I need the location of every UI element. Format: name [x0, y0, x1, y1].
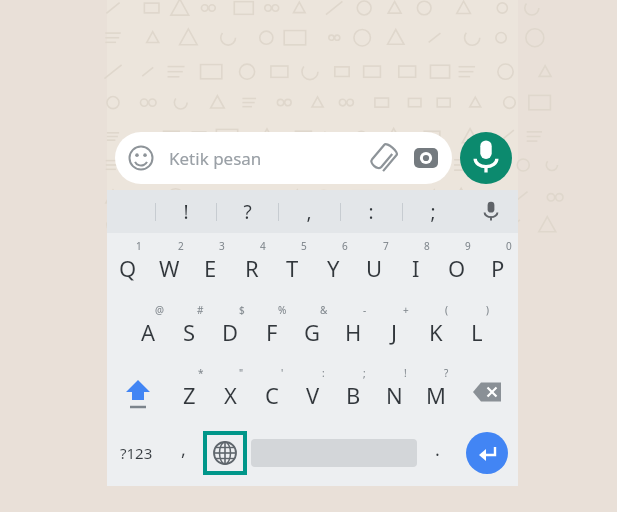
- staticText: E: [204, 253, 217, 283]
- button[interactable]: Camera: [412, 144, 440, 172]
- button[interactable]: Shift: [107, 360, 169, 423]
- staticText: ": [239, 366, 244, 380]
- button[interactable]: C: [251, 360, 292, 423]
- staticText: M: [426, 380, 446, 410]
- button[interactable]: N: [374, 360, 415, 423]
- staticText: Q: [119, 253, 137, 283]
- button[interactable]: G: [292, 297, 333, 360]
- staticText: 0: [506, 239, 512, 253]
- button[interactable]: ?123: [107, 423, 166, 482]
- staticText: N: [386, 380, 403, 410]
- button[interactable]: F: [251, 297, 292, 360]
- staticText: R: [245, 253, 259, 283]
- staticText: X: [224, 380, 237, 410]
- staticText: ?: [444, 366, 449, 380]
- staticText: Z: [183, 380, 196, 410]
- staticText: 3: [219, 239, 225, 253]
- staticText: P: [491, 253, 505, 283]
- button[interactable]: Y: [313, 233, 354, 297]
- button[interactable]: H: [333, 297, 374, 360]
- staticText: S: [183, 317, 196, 347]
- button[interactable]: B: [333, 360, 374, 423]
- button[interactable]: V: [292, 360, 333, 423]
- staticText: D: [222, 317, 239, 347]
- button[interactable]: T: [272, 233, 313, 297]
- staticText: ;: [430, 199, 436, 225]
- button[interactable]: L: [456, 297, 497, 360]
- button[interactable]: Enter: [466, 432, 508, 474]
- staticText: C: [265, 380, 279, 410]
- button[interactable]: Q: [107, 233, 149, 297]
- staticText: 9: [465, 239, 471, 253]
- staticText: F: [266, 317, 278, 347]
- staticText: 2: [178, 239, 184, 253]
- button[interactable]: Voice message: [460, 132, 512, 184]
- button[interactable]: W: [149, 233, 190, 297]
- staticText: :: [322, 366, 325, 380]
- staticText: !: [404, 366, 407, 380]
- staticText: V: [306, 380, 320, 410]
- staticText: -: [363, 303, 367, 317]
- staticText: &: [320, 303, 328, 317]
- staticText: ,: [306, 199, 312, 225]
- staticText: 4: [260, 239, 266, 253]
- staticText: ): [486, 303, 489, 317]
- button[interactable]: D: [210, 297, 251, 360]
- staticText: 7: [383, 239, 389, 253]
- button[interactable]: ,: [278, 190, 340, 233]
- button[interactable]: ?: [216, 190, 278, 233]
- button[interactable]: ,: [166, 423, 201, 482]
- button[interactable]: S: [169, 297, 210, 360]
- button[interactable]: I: [395, 233, 436, 297]
- button[interactable]: Z: [169, 360, 210, 423]
- staticText: +: [403, 303, 409, 317]
- staticText: .: [435, 437, 440, 462]
- staticText: !: [183, 199, 189, 225]
- button[interactable]: :: [340, 190, 402, 233]
- button[interactable]: U: [354, 233, 395, 297]
- staticText: @: [155, 303, 164, 317]
- staticText: ': [281, 366, 284, 380]
- staticText: *: [198, 366, 204, 380]
- button[interactable]: Attach: [368, 143, 398, 173]
- button[interactable]: P: [477, 233, 518, 297]
- staticText: ;: [363, 366, 366, 380]
- button[interactable]: M: [415, 360, 456, 423]
- staticText: I: [412, 253, 420, 283]
- staticText: O: [448, 253, 466, 283]
- button[interactable]: Change language: [207, 435, 243, 471]
- staticText: W: [159, 253, 180, 283]
- button[interactable]: J: [374, 297, 415, 360]
- button[interactable]: A: [128, 297, 169, 360]
- staticText: :: [368, 199, 374, 225]
- button[interactable]: R: [231, 233, 272, 297]
- button[interactable]: Emoji: [127, 144, 155, 172]
- button[interactable]: .: [420, 423, 455, 482]
- staticText: $: [239, 303, 245, 317]
- staticText: 1: [136, 239, 142, 253]
- staticText: ,: [181, 437, 186, 462]
- staticText: B: [346, 380, 361, 410]
- staticText: J: [391, 317, 398, 347]
- button[interactable]: K: [415, 297, 456, 360]
- staticText: ?: [243, 199, 252, 225]
- button[interactable]: Backspace: [456, 360, 518, 423]
- button[interactable]: Voice input: [464, 190, 518, 233]
- staticText: %: [278, 303, 287, 317]
- staticText: 5: [301, 239, 307, 253]
- staticText: (: [445, 303, 448, 317]
- staticText: Y: [327, 253, 340, 283]
- button[interactable]: E: [190, 233, 231, 297]
- staticText: L: [471, 317, 483, 347]
- staticText: #: [197, 303, 204, 317]
- staticText: H: [345, 317, 362, 347]
- button[interactable]: !: [155, 190, 216, 233]
- button[interactable]: O: [436, 233, 477, 297]
- staticText: Ketik pesan: [169, 147, 262, 170]
- button[interactable]: X: [210, 360, 251, 423]
- staticText: ?123: [120, 443, 153, 463]
- button[interactable]: ;: [402, 190, 464, 233]
- button[interactable]: Emoji: [115, 132, 452, 184]
- staticText: U: [366, 253, 383, 283]
